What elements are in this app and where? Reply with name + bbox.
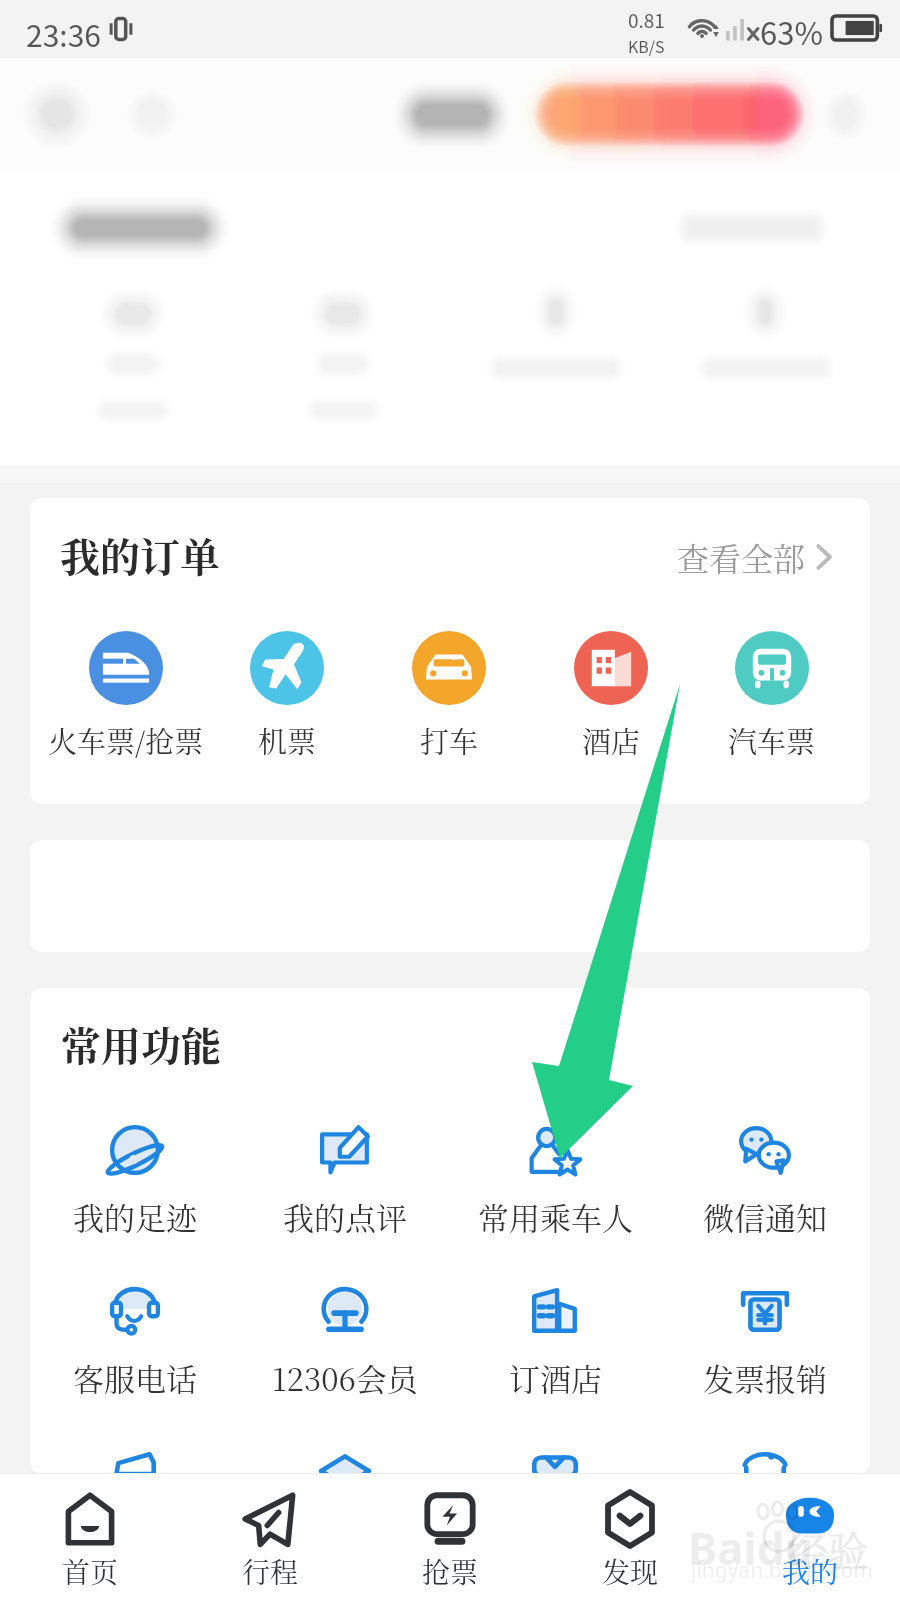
staticText: 23:36 xyxy=(26,12,101,55)
staticText: 我的订单 xyxy=(60,526,220,583)
staticText: 常用功能 xyxy=(61,1015,221,1072)
staticText: 我的 xyxy=(782,1551,839,1591)
button[interactable]: 查看全部 xyxy=(677,534,834,580)
button[interactable]: 行程 xyxy=(180,1492,360,1591)
staticText: 订酒店 xyxy=(509,1355,602,1400)
staticText: 抢票 xyxy=(422,1551,479,1591)
button[interactable]: 火车票/抢票 xyxy=(42,631,210,762)
button[interactable]: 常用乘车人 xyxy=(460,1124,650,1239)
staticText: 首页 xyxy=(62,1551,119,1591)
button[interactable]: 发现 xyxy=(540,1492,720,1591)
staticText: 机票 xyxy=(258,720,317,762)
staticText: 经验 xyxy=(788,1520,868,1577)
staticText: 客服电话 xyxy=(73,1355,197,1400)
button[interactable]: 我的点评 xyxy=(250,1124,440,1239)
button[interactable]: 订酒店 xyxy=(460,1285,650,1400)
staticText: 打车 xyxy=(420,720,479,762)
button[interactable]: 发票报销 xyxy=(670,1285,860,1400)
staticText: 行程 xyxy=(242,1551,299,1591)
staticText: 63% xyxy=(760,9,823,54)
button[interactable]: 打车 xyxy=(365,631,533,762)
button[interactable] xyxy=(670,1446,860,1474)
staticText: 我的足迹 xyxy=(73,1194,197,1239)
button[interactable]: 机票 xyxy=(203,631,371,762)
button[interactable]: 微信通知 xyxy=(670,1124,860,1239)
staticText: 发票报销 xyxy=(703,1355,827,1400)
button[interactable]: 首页 xyxy=(0,1492,180,1591)
staticText: 我的点评 xyxy=(283,1194,407,1239)
staticText: 火车票/抢票 xyxy=(48,720,204,762)
button[interactable]: 酒店 xyxy=(527,631,695,762)
staticText: 酒店 xyxy=(582,720,641,762)
staticText: 汽车票 xyxy=(728,720,816,762)
button[interactable] xyxy=(460,1446,650,1474)
staticText: 0.81 xyxy=(628,6,665,34)
button[interactable] xyxy=(250,1446,440,1474)
button[interactable]: 12306会员 xyxy=(250,1285,440,1400)
button[interactable]: 我的 xyxy=(720,1492,900,1591)
staticText: Baidu xyxy=(688,1518,814,1578)
button[interactable]: 抢票 xyxy=(360,1492,540,1591)
button[interactable]: 客服电话 xyxy=(40,1285,230,1400)
staticText: 查看全部 xyxy=(677,534,806,580)
button[interactable] xyxy=(40,1446,230,1474)
staticText: KB/S xyxy=(628,34,665,57)
button[interactable]: 汽车票 xyxy=(688,631,856,762)
staticText: 发现 xyxy=(602,1551,659,1591)
staticText: 微信通知 xyxy=(703,1194,827,1239)
staticText: 12306会员 xyxy=(272,1355,418,1400)
button[interactable]: 我的足迹 xyxy=(40,1124,230,1239)
staticText: jingyan.baidu.com xyxy=(691,1556,873,1585)
staticText: 常用乘车人 xyxy=(478,1194,633,1239)
